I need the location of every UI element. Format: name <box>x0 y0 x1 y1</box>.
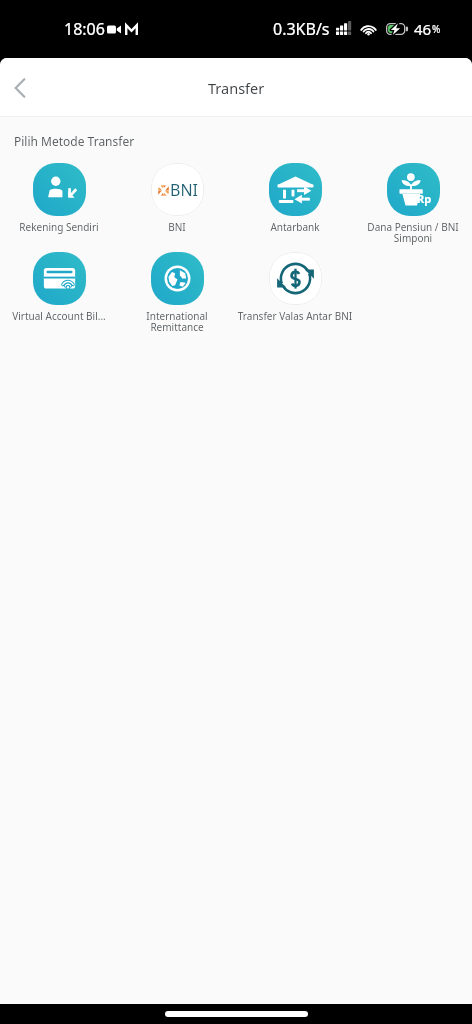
staticText: Antarbank <box>239 220 351 234</box>
button[interactable]: Rekening Sendiri <box>0 163 118 234</box>
staticText: % <box>432 22 441 36</box>
button[interactable]: Transfer Valas Antar BNI <box>236 252 354 323</box>
staticText: Rekening Sendiri <box>3 220 115 234</box>
button[interactable]: BNI <box>118 163 236 234</box>
staticText: 46 <box>414 19 432 39</box>
button[interactable]: Virtual Account Bil... <box>0 252 118 323</box>
staticText: 0.3KB/s <box>273 18 330 40</box>
button[interactable]: Rp <box>354 163 472 245</box>
staticText: 18:06 <box>64 18 105 40</box>
button[interactable]: Back <box>2 70 38 106</box>
staticText: International Remittance <box>138 309 216 334</box>
staticText: Transfer <box>208 78 265 98</box>
staticText: Virtual Account Bil... <box>3 309 115 323</box>
staticText: Rp <box>417 191 432 206</box>
staticText: BNI <box>121 220 233 234</box>
staticText: Transfer Valas Antar BNI <box>236 309 354 323</box>
staticText: BNI <box>170 179 198 201</box>
button[interactable]: International Remittance <box>118 252 236 334</box>
button[interactable]: Antarbank <box>236 163 354 234</box>
staticText: Pilih Metode Transfer <box>14 133 135 149</box>
staticText: Dana Pensiun / BNI Simponi <box>364 220 462 245</box>
